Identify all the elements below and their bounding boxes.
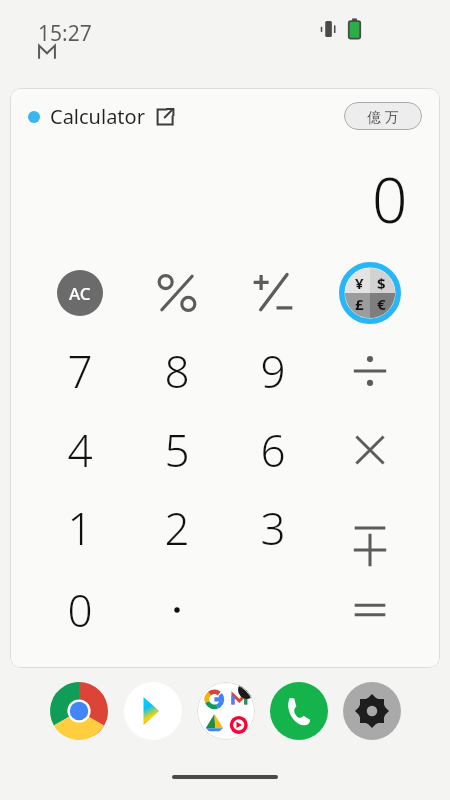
button[interactable]: 4 (43, 413, 117, 487)
button[interactable]: Play Store (123, 681, 183, 741)
staticText: 0 (67, 580, 93, 640)
button[interactable]: 5 (140, 413, 214, 487)
button[interactable]: Google folder (196, 681, 256, 741)
staticText: € (377, 294, 386, 314)
button[interactable]: 6 (236, 413, 310, 487)
staticText: Calculator (50, 103, 145, 130)
button[interactable]: 0 (43, 573, 117, 647)
staticText: £ (355, 294, 364, 314)
staticText: $ (377, 273, 386, 293)
button[interactable]: Percent (140, 256, 214, 330)
button[interactable]: 9 (236, 334, 310, 408)
staticText: 3 (260, 498, 286, 558)
button[interactable]: 1 (43, 491, 117, 565)
button[interactable]: Chrome (49, 681, 109, 741)
staticText: 億 万 (367, 107, 399, 126)
staticText: 5 (164, 420, 190, 480)
staticText: 6 (260, 420, 286, 480)
button[interactable]: Currency converter (333, 256, 407, 330)
button[interactable]: 3 (236, 491, 310, 565)
button[interactable]: Plus minus (236, 256, 310, 330)
button[interactable]: 億 万 (344, 102, 422, 130)
staticText: 2 (164, 498, 190, 558)
button[interactable]: Multiply (333, 413, 407, 487)
button[interactable]: Plus (333, 513, 407, 587)
button[interactable]: Phone (269, 681, 329, 741)
staticText: 4 (67, 420, 93, 480)
button[interactable]: 2 (140, 491, 214, 565)
staticText: 7 (67, 341, 93, 401)
button[interactable]: Minus (333, 491, 407, 565)
staticText: 15:27 (38, 19, 92, 48)
button[interactable]: Settings (342, 681, 402, 741)
staticText: AC (69, 282, 91, 305)
button[interactable]: All clear (43, 256, 117, 330)
button[interactable]: Equals (333, 573, 407, 647)
staticText: 1 (67, 498, 93, 558)
staticText: 8 (164, 341, 190, 401)
button[interactable]: 7 (43, 334, 117, 408)
button[interactable]: Divide (333, 334, 407, 408)
button[interactable]: 8 (140, 334, 214, 408)
staticText: 9 (260, 341, 286, 401)
button[interactable]: Decimal point (140, 573, 214, 647)
button[interactable]: Calculator (28, 103, 175, 130)
other: Open in new window (155, 107, 175, 127)
staticText: ¥ (355, 273, 364, 293)
staticText: 0 (372, 157, 408, 241)
